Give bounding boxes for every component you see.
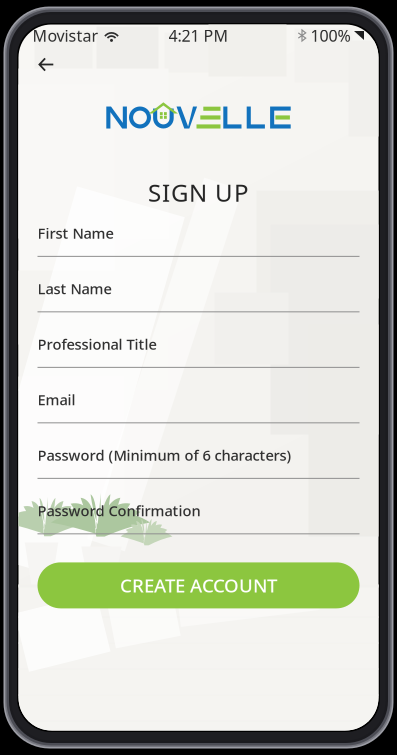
button[interactable]: CREATE ACCOUNT — [37, 562, 359, 608]
button[interactable]: Email — [37, 381, 359, 436]
staticText: First Name — [37, 223, 113, 243]
button[interactable]: Password (Minimum of 6 characters) — [37, 436, 359, 492]
staticText: Password Confirmation — [37, 501, 200, 520]
staticText: 4:21 PM — [168, 25, 228, 46]
button[interactable]: Last Name — [37, 270, 359, 325]
staticText: CREATE ACCOUNT — [120, 573, 277, 598]
staticText: 100% — [310, 25, 350, 46]
button[interactable]: Password Confirmation — [37, 492, 359, 547]
button[interactable]: Professional Title — [37, 325, 359, 381]
staticText: Last Name — [37, 279, 111, 298]
staticText: Professional Title — [37, 334, 156, 354]
staticText: Password (Minimum of 6 characters) — [37, 445, 291, 465]
staticText: Email — [37, 390, 75, 409]
staticText: SIGN UP — [148, 176, 249, 208]
button[interactable]: Back — [37, 46, 65, 82]
staticText: Movistar — [32, 25, 98, 46]
button[interactable]: First Name — [37, 214, 359, 270]
